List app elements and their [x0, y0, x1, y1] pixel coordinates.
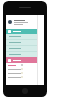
button[interactable]	[6, 52, 37, 57]
button[interactable]	[6, 34, 37, 39]
button[interactable]	[6, 63, 37, 67]
button[interactable]	[6, 15, 37, 29]
button[interactable]	[6, 67, 37, 71]
button[interactable]	[6, 46, 37, 51]
button[interactable]	[6, 75, 37, 79]
button[interactable]	[6, 40, 37, 45]
button[interactable]	[6, 71, 37, 75]
button[interactable]	[6, 29, 37, 34]
button[interactable]	[6, 57, 37, 63]
